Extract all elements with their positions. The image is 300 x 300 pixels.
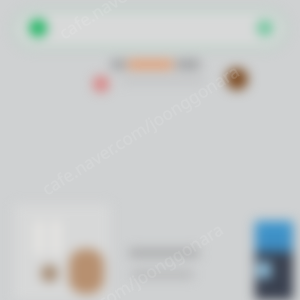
button[interactable] <box>13 9 287 49</box>
staticText: cafe.naver.com/joonggonara <box>54 0 261 44</box>
staticText: cafe.naver.com/joonggonara <box>37 59 244 200</box>
staticText: cafe.naver.com/joonggonara <box>21 217 228 300</box>
